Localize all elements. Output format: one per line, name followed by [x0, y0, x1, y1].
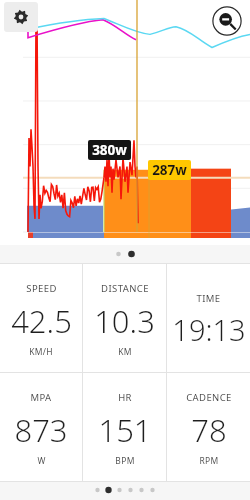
button[interactable]: Settings [4, 2, 38, 32]
button[interactable]: TIME [167, 264, 250, 372]
staticText: 151 [98, 409, 152, 451]
button[interactable]: Zoom out [211, 5, 243, 37]
button[interactable]: 380w [88, 140, 131, 160]
staticText: 287w [152, 161, 187, 179]
staticText: SPEED [26, 282, 57, 295]
button[interactable]: HR [83, 373, 166, 481]
staticText: 380w [92, 141, 127, 159]
staticText: KM [118, 346, 132, 358]
staticText: 873 [14, 409, 68, 451]
staticText: KM/H [29, 346, 53, 358]
staticText: W [37, 455, 46, 467]
staticText: DISTANCE [101, 282, 149, 295]
staticText: BPM [115, 455, 135, 467]
button[interactable]: CADENCE [167, 373, 250, 481]
staticText: MPA [30, 391, 52, 404]
staticText: HR [118, 391, 132, 404]
staticText: TIME [196, 292, 221, 305]
staticText: 10.3 [94, 300, 155, 342]
staticText: 78 [191, 409, 227, 451]
staticText: 19:13 [172, 310, 246, 349]
staticText: 42.5 [11, 300, 72, 342]
button[interactable]: DISTANCE [83, 264, 166, 372]
staticText: CADENCE [186, 391, 232, 404]
button[interactable]: SPEED [0, 264, 82, 372]
button[interactable]: MPA [0, 373, 82, 481]
staticText: RPM [199, 455, 219, 467]
button[interactable]: 287w [148, 160, 191, 180]
